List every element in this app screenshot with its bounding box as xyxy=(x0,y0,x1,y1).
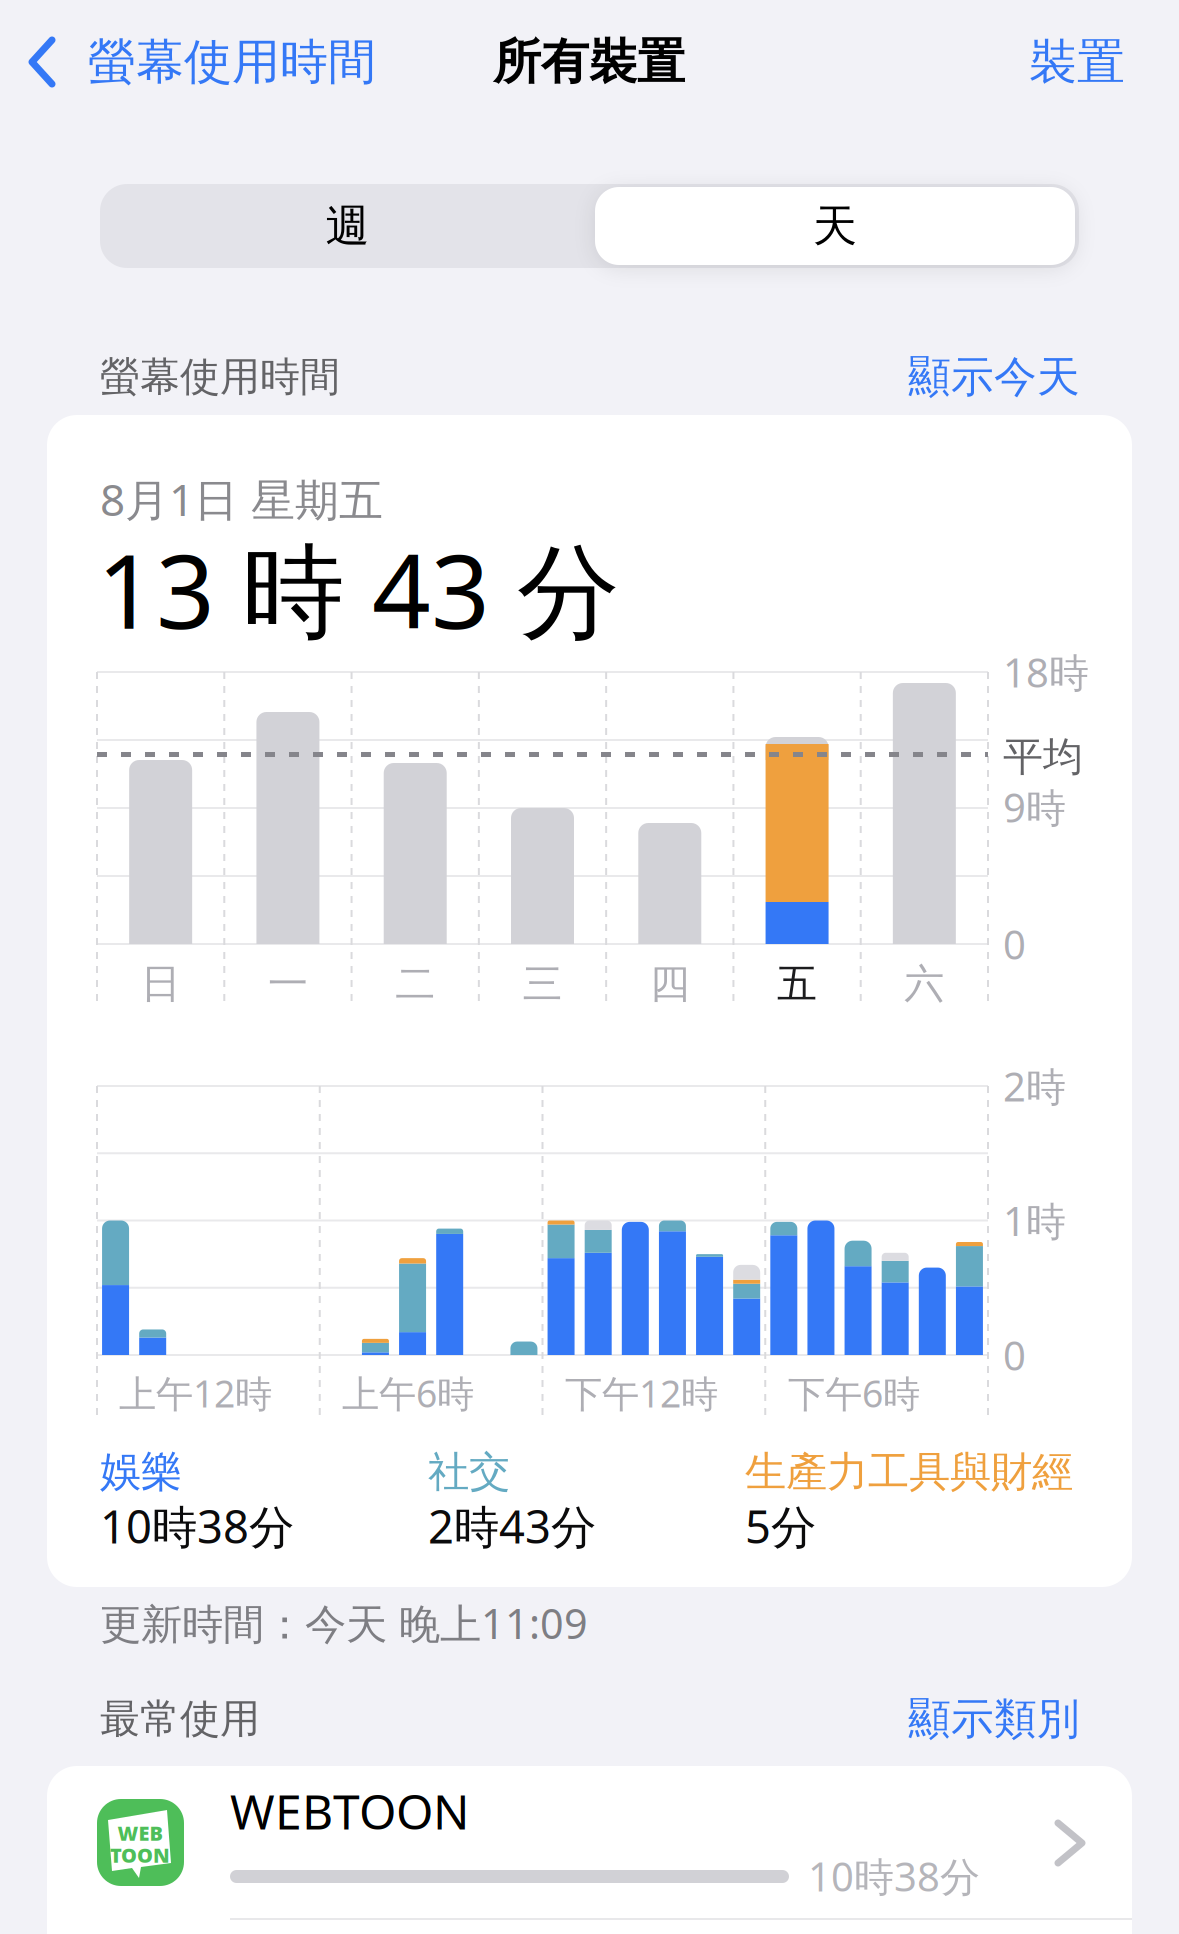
staticText: 三 xyxy=(522,959,562,1008)
staticText: 二 xyxy=(395,959,435,1008)
staticText: 更新時間：今天 晚上11:09 xyxy=(100,1596,588,1650)
button[interactable]: 顯示類別 xyxy=(860,1690,1080,1748)
staticText: 上午6時 xyxy=(342,1368,474,1418)
staticText: 上午12時 xyxy=(119,1368,272,1418)
staticText: 下午6時 xyxy=(788,1368,920,1418)
button[interactable]: 週 xyxy=(100,184,595,268)
staticText: 日 xyxy=(141,959,181,1008)
staticText: 18時 xyxy=(1003,645,1089,698)
staticText: 2時43分 xyxy=(428,1496,596,1556)
staticText: 1時 xyxy=(1003,1194,1066,1247)
staticText: WEBTOON xyxy=(230,1779,469,1843)
staticText: 所有裝置 xyxy=(493,32,685,91)
staticText: 0 xyxy=(1003,917,1026,970)
staticText: 娛樂 xyxy=(100,1447,182,1497)
staticText: 裝置 xyxy=(1029,32,1125,91)
staticText: 四 xyxy=(650,959,690,1008)
button[interactable]: WEB xyxy=(47,1766,1132,1934)
button[interactable]: 顯示今天 xyxy=(860,348,1080,406)
staticText: 生產力工具與財經 xyxy=(745,1447,1073,1497)
staticText: 螢幕使用時間 xyxy=(88,32,376,91)
staticText: 平均 xyxy=(1003,732,1083,781)
button[interactable]: 天 xyxy=(595,184,1075,268)
staticText: 2時 xyxy=(1003,1059,1066,1112)
staticText: 五 xyxy=(777,959,817,1008)
staticText: WEB xyxy=(117,1820,162,1846)
staticText: 顯示類別 xyxy=(908,1693,1080,1745)
staticText: 10時38分 xyxy=(808,1849,980,1902)
staticText: 下午12時 xyxy=(565,1368,718,1418)
staticText: 社交 xyxy=(428,1447,510,1497)
button[interactable]: 裝置 xyxy=(1015,31,1125,93)
staticText: 六 xyxy=(904,959,944,1008)
staticText: 0 xyxy=(1003,1328,1026,1381)
button[interactable]: 螢幕使用時間 xyxy=(30,31,400,93)
staticText: TOON xyxy=(110,1842,170,1868)
staticText: 13 時 43 分 xyxy=(97,521,620,657)
staticText: 10時38分 xyxy=(100,1496,294,1556)
staticText: 螢幕使用時間 xyxy=(100,352,340,401)
staticText: 最常使用 xyxy=(100,1694,260,1743)
staticText: 5分 xyxy=(745,1496,816,1556)
staticText: 顯示今天 xyxy=(908,351,1080,403)
staticText: 一 xyxy=(268,959,308,1008)
staticText: 天 xyxy=(813,199,857,253)
staticText: 8月1日 星期五 xyxy=(100,470,383,528)
staticText: 週 xyxy=(325,199,369,253)
staticText: 9時 xyxy=(1003,780,1066,833)
